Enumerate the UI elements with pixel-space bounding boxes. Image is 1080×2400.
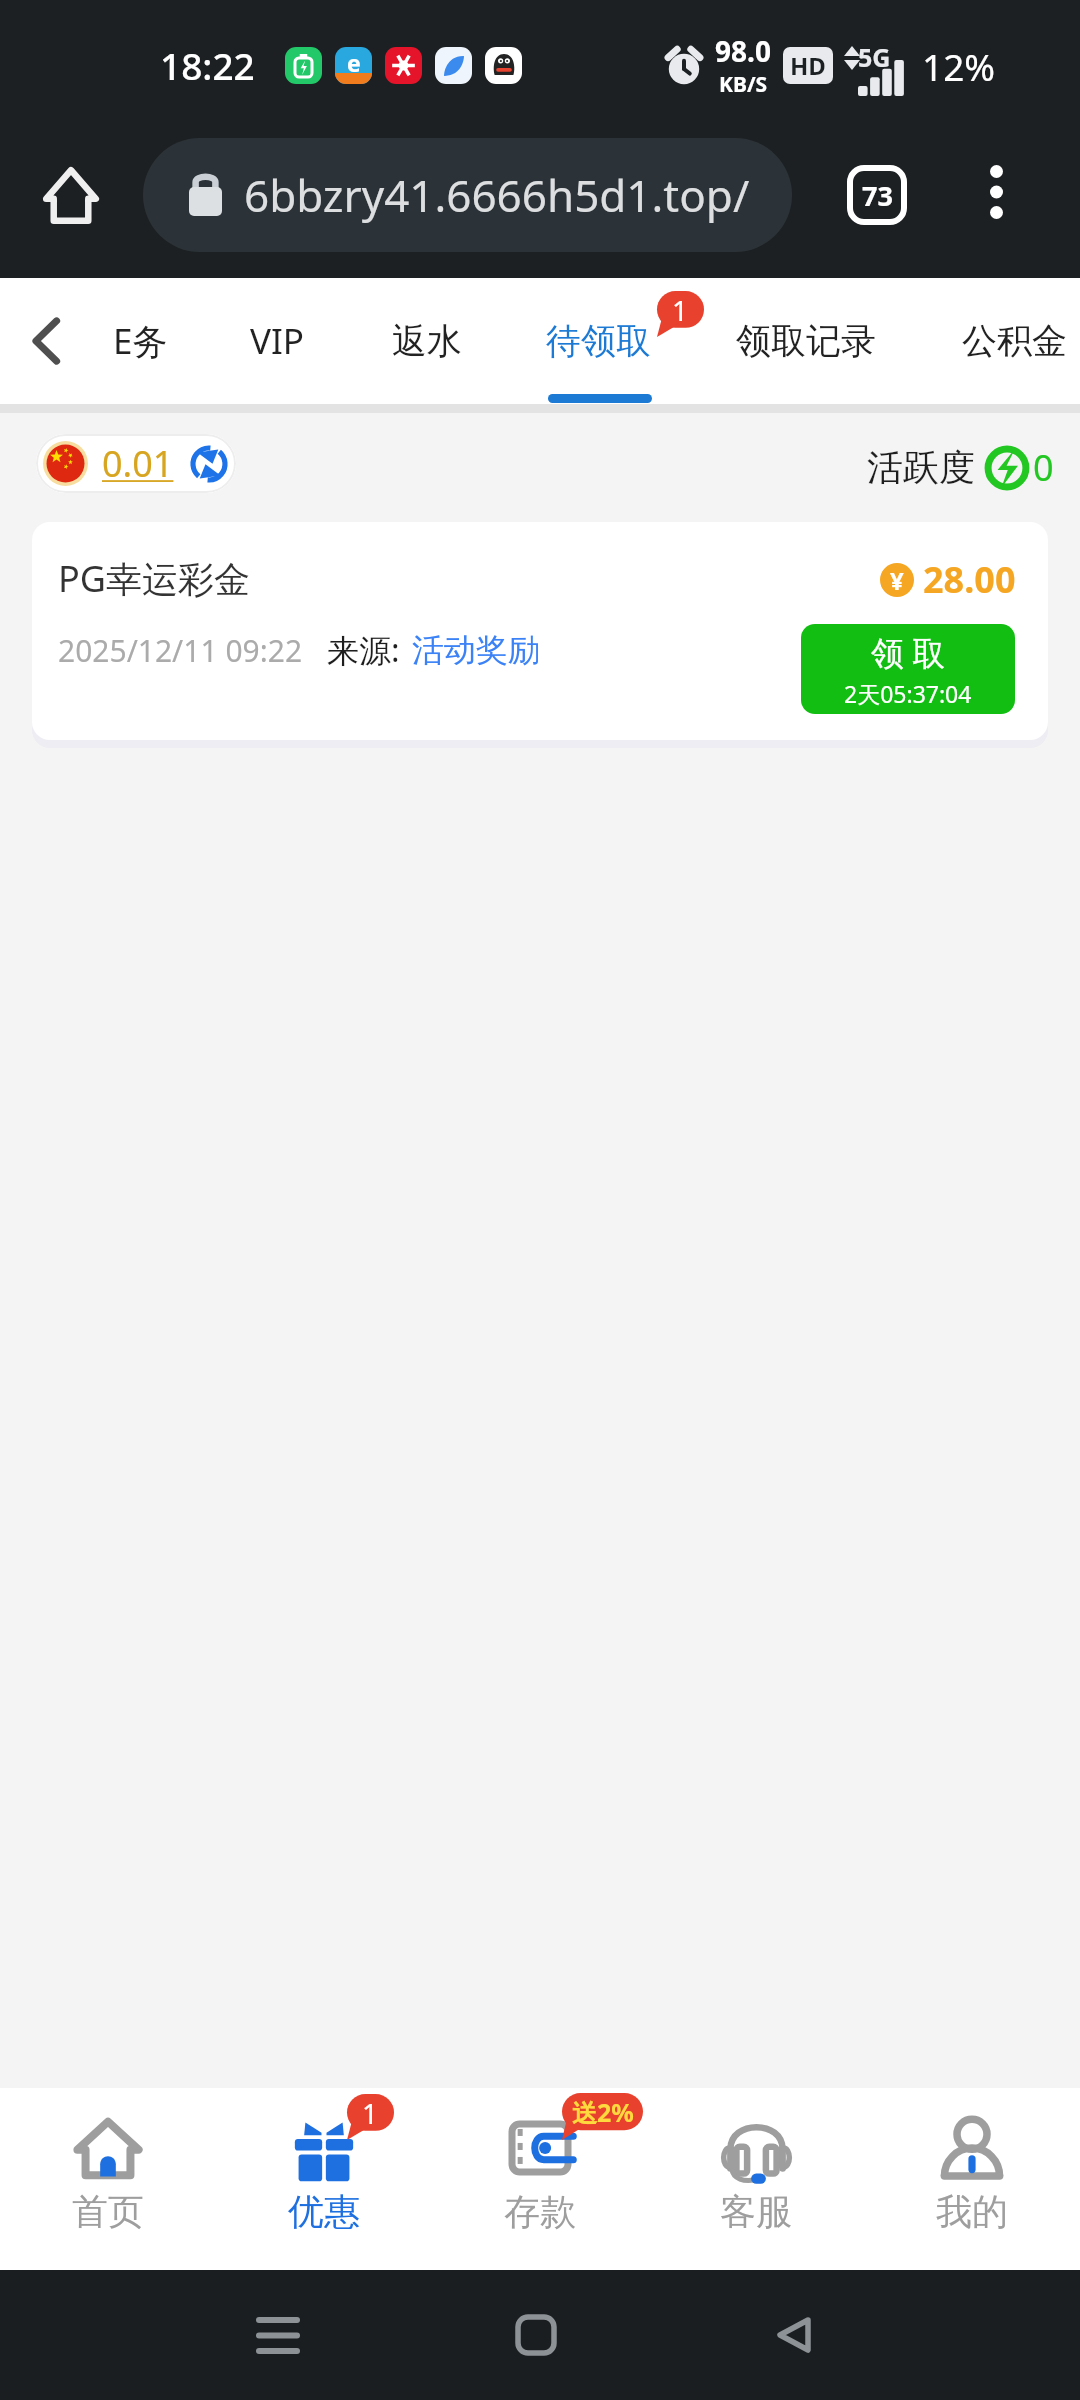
staticText: e <box>347 47 361 78</box>
staticText: 公积金 <box>962 319 1067 363</box>
button[interactable]: Back <box>734 2270 854 2400</box>
staticText: 98.0 <box>715 32 771 70</box>
staticText: 存款 <box>504 2189 576 2234</box>
staticText: E务 <box>113 317 168 365</box>
button[interactable]: 领取记录 <box>701 278 911 404</box>
staticText: 返水 <box>392 319 462 363</box>
staticText: 0.01 <box>102 439 174 488</box>
staticText: 待领取 <box>546 319 651 363</box>
staticText: 5G <box>858 40 891 74</box>
button[interactable]: Home <box>476 2270 596 2400</box>
staticText: 领取记录 <box>736 319 876 363</box>
staticText: VIP <box>250 317 305 365</box>
button[interactable]: 返水 <box>362 278 492 404</box>
staticText: ¥ <box>890 564 904 597</box>
button[interactable]: 公积金 <box>929 278 1080 404</box>
staticText: 我的 <box>936 2189 1008 2234</box>
staticText: 来源: <box>327 628 400 672</box>
staticText: 12% <box>922 41 996 91</box>
button[interactable]: 领 取 <box>801 624 1015 714</box>
button[interactable]: 首页 <box>0 2088 216 2270</box>
staticText: 28.00 <box>923 555 1016 604</box>
staticText: 活跃度 <box>867 445 975 490</box>
button[interactable]: Back <box>8 278 84 404</box>
staticText: HD <box>790 49 826 82</box>
button[interactable]: Recents <box>218 2270 338 2400</box>
staticText: 2025/12/11 09:22 <box>58 630 303 671</box>
staticText: PG幸运彩金 <box>58 554 250 603</box>
staticText: 送2% <box>572 2095 634 2129</box>
button[interactable]: 待领取 <box>513 278 683 404</box>
button[interactable]: Tabs <box>833 151 921 239</box>
button[interactable]: 0.01 <box>36 434 236 493</box>
staticText: 优惠 <box>288 2189 360 2234</box>
staticText: 领 取 <box>871 630 946 675</box>
staticText: 0 <box>1033 443 1054 492</box>
staticText: 客服 <box>720 2189 792 2234</box>
button[interactable]: 客服 <box>648 2088 864 2270</box>
button[interactable]: 我的 <box>864 2088 1080 2270</box>
staticText: 2天05:37:04 <box>844 678 972 709</box>
button[interactable]: VIP <box>217 278 337 404</box>
staticText: KB/S <box>719 70 768 99</box>
button[interactable]: 优惠 <box>216 2088 432 2270</box>
staticText: 18:22 <box>160 40 255 90</box>
staticText: 73 <box>862 177 893 214</box>
button[interactable]: More options <box>955 151 1037 233</box>
staticText: 首页 <box>72 2189 144 2234</box>
button[interactable]: Home <box>24 148 118 242</box>
button[interactable]: 存款 <box>432 2088 648 2270</box>
button[interactable]: 6bbzry41.6666h5d1.top/ <box>143 138 792 252</box>
staticText: 1 <box>362 2094 379 2131</box>
staticText: 活动奖励 <box>412 630 540 670</box>
staticText: 6bbzry41.6666h5d1.top/ <box>244 165 750 225</box>
staticText: 1 <box>672 291 689 328</box>
button[interactable]: E务 <box>80 278 200 404</box>
